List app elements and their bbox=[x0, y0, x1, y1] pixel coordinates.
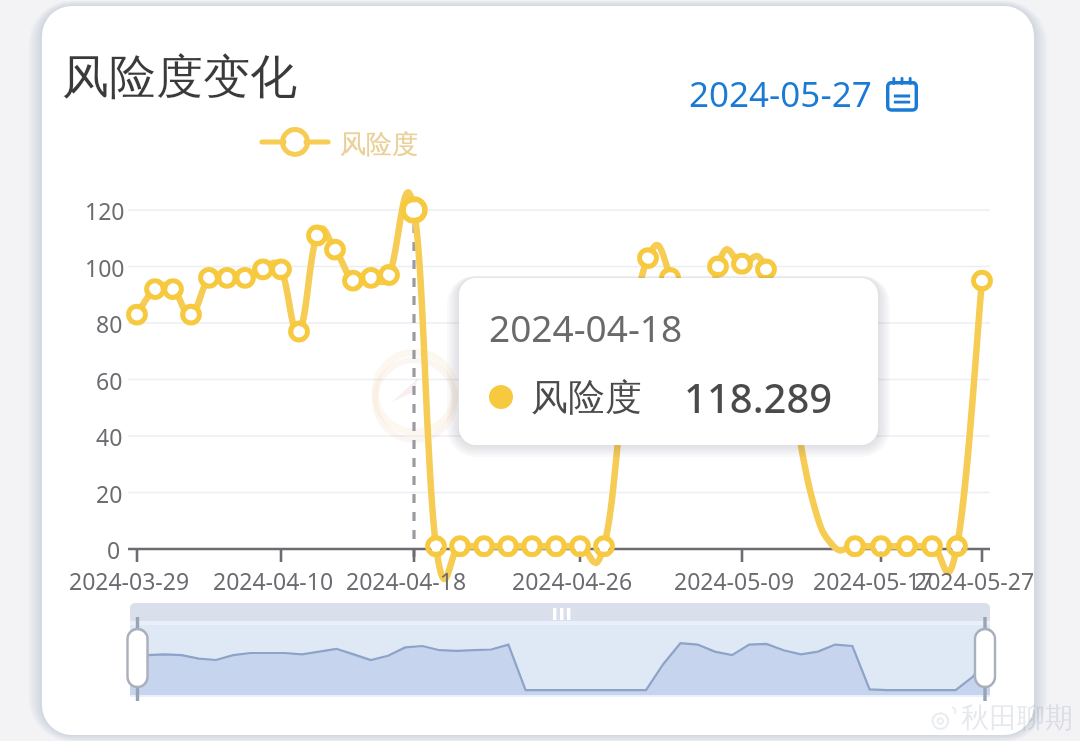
staticText: 2024-05-17 bbox=[813, 565, 934, 596]
staticText: 80 bbox=[96, 308, 123, 339]
staticText: 2024-04-10 bbox=[213, 565, 334, 596]
staticText: 118.289 bbox=[684, 370, 833, 424]
staticText: 秋田聊期 bbox=[961, 700, 1073, 735]
staticText: 2024-04-18 bbox=[346, 565, 467, 596]
staticText: 2024-05-09 bbox=[674, 565, 795, 596]
staticText: 120 bbox=[85, 195, 125, 226]
staticText: 20 bbox=[96, 478, 123, 509]
staticText: 0 bbox=[107, 534, 121, 565]
staticText: 风险度变化 bbox=[62, 48, 297, 107]
staticText: 2024-05-27 bbox=[914, 565, 1035, 596]
staticText: 60 bbox=[96, 365, 123, 396]
staticText: 100 bbox=[85, 252, 125, 283]
other: Select date bbox=[885, 77, 919, 111]
staticText: 风险度 bbox=[340, 128, 418, 161]
staticText: 2024-03-29 bbox=[69, 565, 190, 596]
staticText: 2024-04-26 bbox=[512, 565, 633, 596]
staticText: 2024-05-27 bbox=[689, 70, 872, 118]
staticText: 风险度 bbox=[531, 374, 642, 421]
staticText: 2024-04-18 bbox=[489, 302, 683, 352]
button[interactable]: 2024-05-27 bbox=[671, 62, 952, 125]
staticText: 40 bbox=[96, 421, 123, 452]
